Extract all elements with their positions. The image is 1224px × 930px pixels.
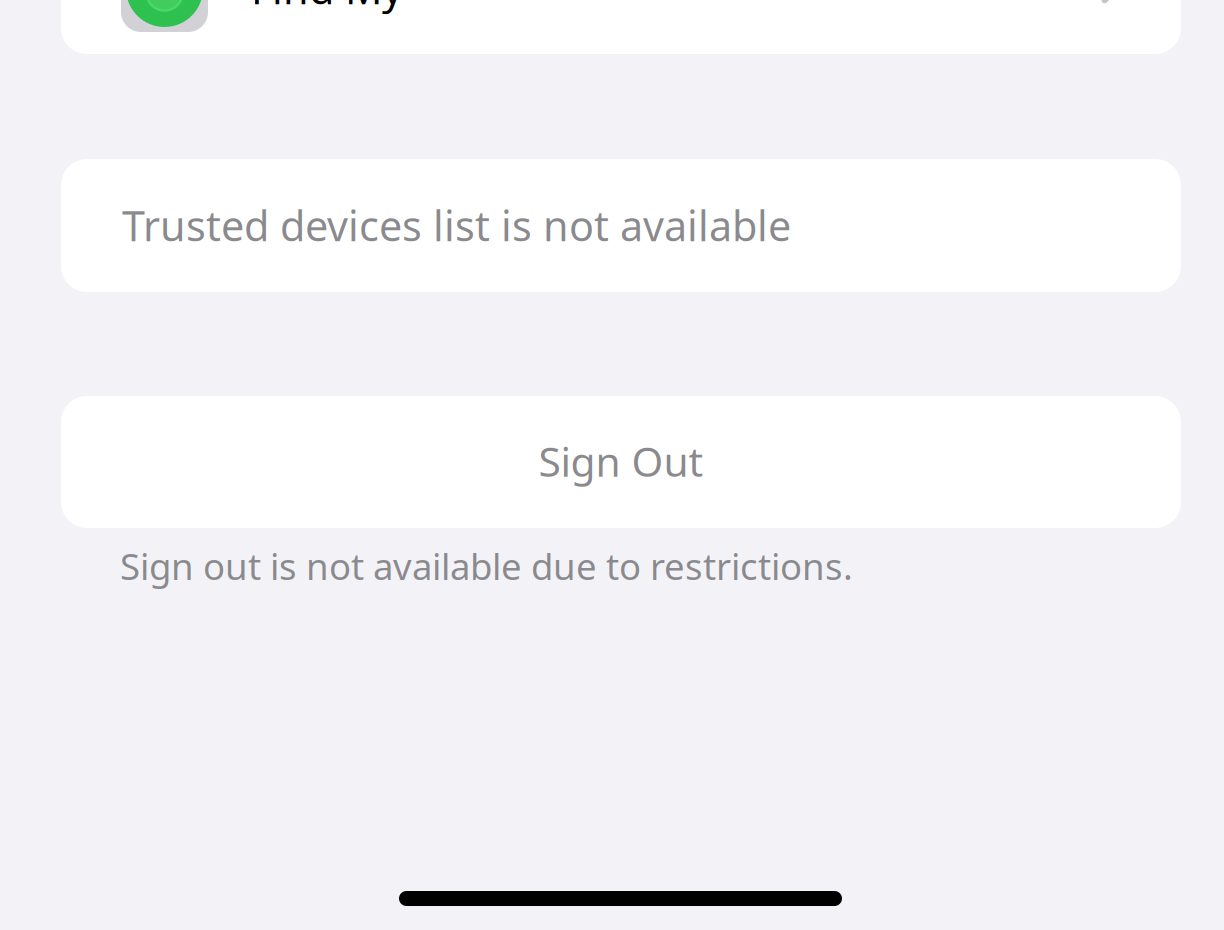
staticText: Trusted devices list is not available (122, 197, 791, 253)
button[interactable]: Sign Out (61, 396, 1181, 528)
staticText: Find My (251, 0, 403, 16)
button[interactable]: Find My (61, 0, 1181, 54)
staticText: Sign out is not available due to restric… (120, 541, 853, 591)
staticText: Sign Out (538, 433, 703, 489)
